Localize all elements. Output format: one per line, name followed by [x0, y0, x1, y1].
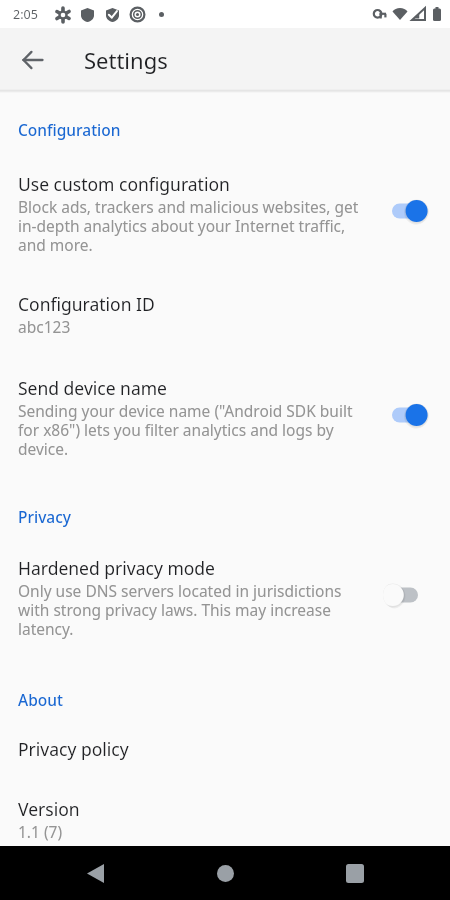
button[interactable]: Recents	[327, 846, 383, 900]
button[interactable]: Home	[197, 846, 253, 900]
button[interactable]: Configuration ID	[0, 292, 450, 337]
button[interactable]: Off	[383, 581, 429, 609]
button[interactable]: Back	[8, 36, 56, 84]
staticText: Configuration ID	[18, 292, 155, 316]
button[interactable]: Send device name	[0, 376, 450, 459]
staticText: Configuration	[18, 119, 121, 140]
button[interactable]: Hardened privacy mode	[0, 556, 450, 639]
button[interactable]: Use custom configuration	[0, 172, 450, 255]
staticText: Settings	[84, 45, 168, 75]
staticText: Only use DNS servers located in jurisdic…	[18, 580, 363, 639]
staticText: 2:05	[13, 6, 38, 23]
staticText: abc123	[18, 316, 71, 337]
button[interactable]: Version	[0, 797, 450, 842]
staticText: Sending your device name ("Android SDK b…	[18, 400, 363, 459]
staticText: Privacy	[18, 506, 72, 527]
staticText: Send device name	[18, 376, 167, 400]
staticText: Hardened privacy mode	[18, 556, 215, 580]
staticText: About	[18, 689, 63, 710]
staticText: Use custom configuration	[18, 172, 230, 196]
staticText: 1.1 (7)	[18, 821, 63, 842]
button[interactable]: Back	[67, 846, 123, 900]
staticText: Block ads, trackers and malicious websit…	[18, 196, 363, 255]
button[interactable]: Privacy policy	[0, 737, 450, 761]
button[interactable]: On	[383, 197, 429, 225]
staticText: Version	[18, 797, 80, 821]
staticText: Privacy policy	[18, 737, 129, 761]
button[interactable]: On	[383, 401, 429, 429]
